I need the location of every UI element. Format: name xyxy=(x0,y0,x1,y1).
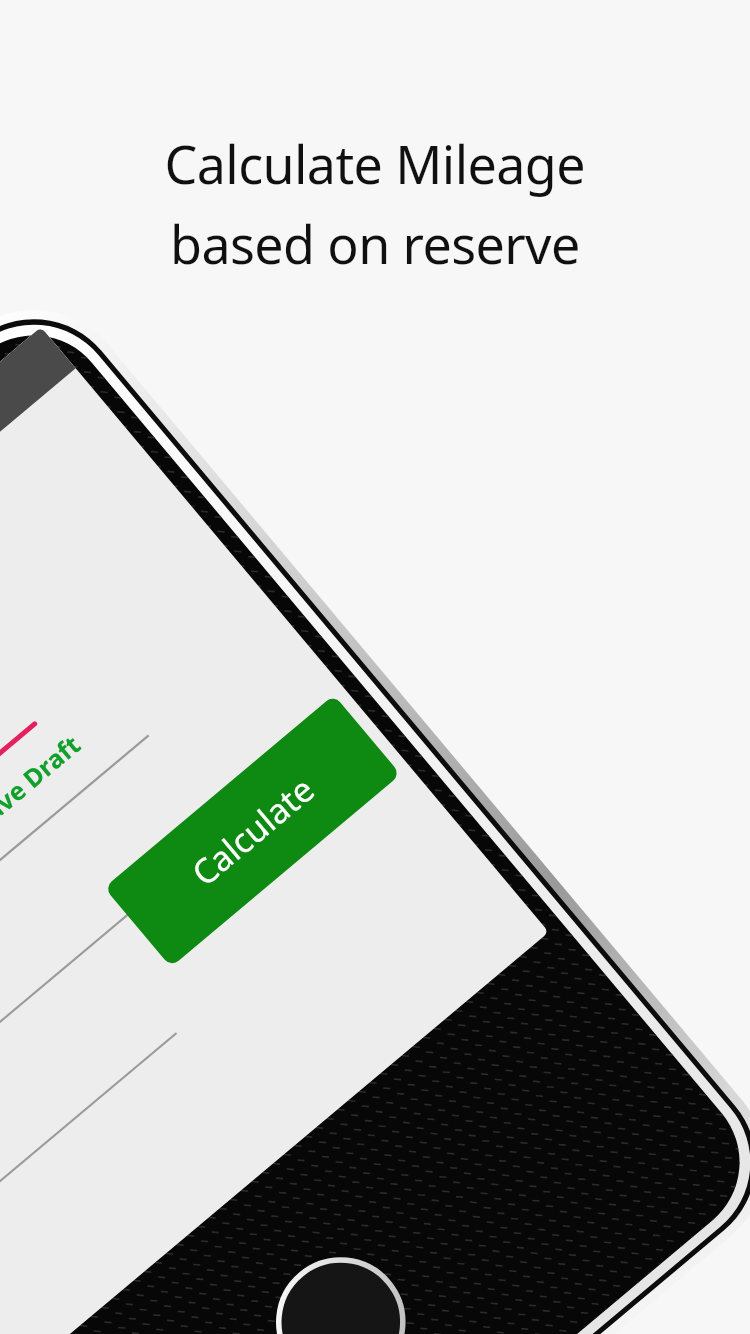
button[interactable]: Calculate Mileage based on reserve xyxy=(0,0,750,1334)
